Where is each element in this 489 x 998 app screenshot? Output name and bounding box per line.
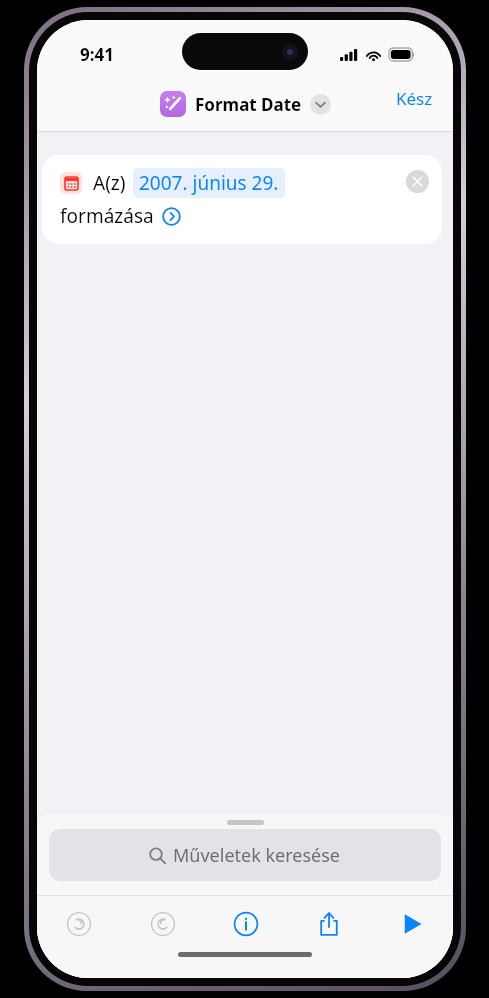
button[interactable]: Kész — [376, 79, 453, 118]
button[interactable]: Futtatás — [370, 896, 453, 952]
staticText: 2007. június 29. — [139, 170, 279, 196]
button[interactable]: További beállítások — [162, 207, 181, 226]
staticText: Format Date — [195, 93, 302, 116]
button[interactable]: 2007. június 29. — [133, 168, 285, 198]
button[interactable]: Művelet törlése — [406, 170, 429, 193]
staticText: Műveletek keresése — [173, 843, 341, 868]
staticText: Kész — [396, 87, 433, 110]
staticText: formázása — [60, 203, 154, 229]
staticText: 9:41 — [80, 43, 114, 66]
button[interactable]: Megosztás — [287, 896, 370, 952]
button[interactable]: Format Date — [160, 91, 331, 117]
button[interactable]: Újra — [121, 896, 204, 952]
button[interactable]: Visszavonás — [37, 896, 121, 952]
button[interactable]: A(z) — [42, 155, 442, 244]
button[interactable]: Információ — [204, 896, 287, 952]
button[interactable]: Műveletek keresése — [49, 829, 441, 881]
staticText: A(z) — [93, 170, 126, 196]
